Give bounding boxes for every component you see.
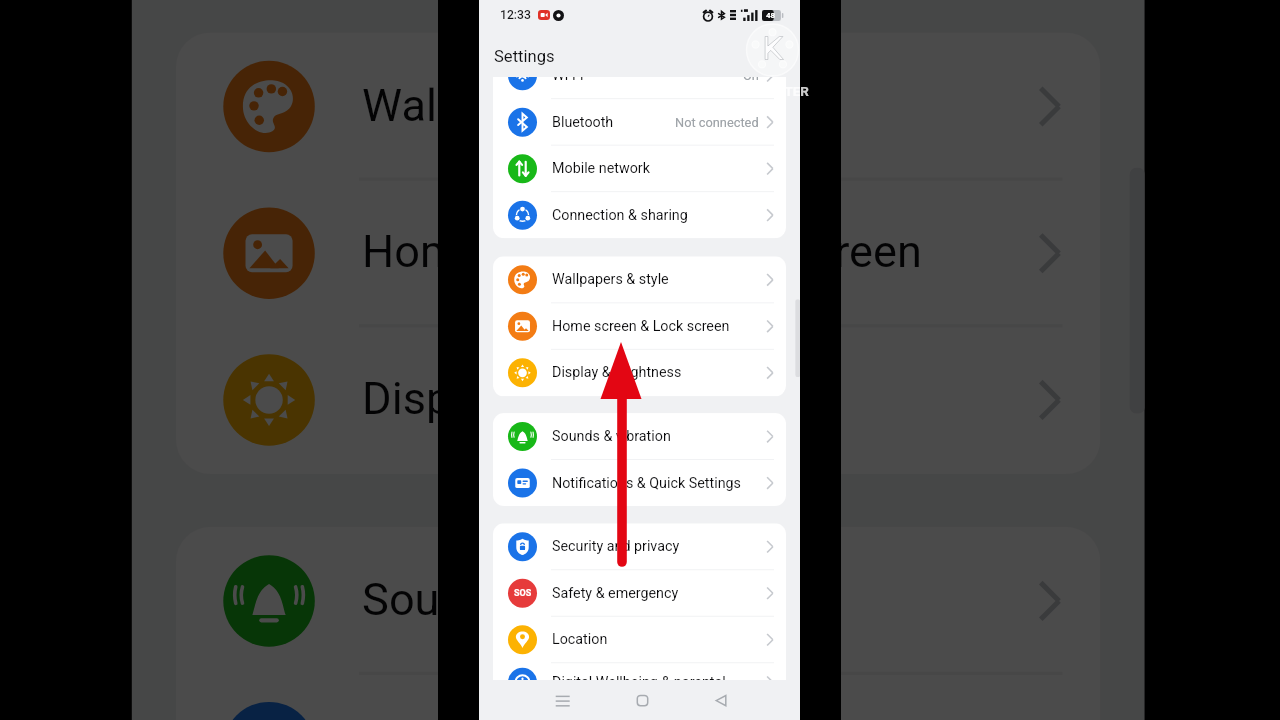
staticText: Wi-Fi — [552, 77, 584, 84]
button[interactable]: Digital Wellbeing & parental — [493, 659, 786, 680]
button[interactable]: Wi-Fi — [493, 77, 786, 99]
staticText: Wallpapers & style — [362, 80, 731, 133]
staticText: Not connected — [675, 115, 759, 130]
staticText: 48 — [766, 11, 776, 20]
staticText: Notifications & Quick Settings — [552, 474, 741, 491]
button[interactable]: Recent apps — [546, 684, 580, 718]
staticText: Display & brightness — [552, 364, 682, 381]
button[interactable]: Security and privacy — [493, 523, 786, 570]
staticText: Wallpapers & style — [552, 271, 669, 288]
button[interactable]: Bluetooth — [493, 99, 786, 146]
button[interactable]: Wallpapers & style — [493, 256, 786, 303]
staticText: Settings — [494, 46, 555, 65]
staticText: Bluetooth — [552, 114, 614, 131]
button[interactable]: Display & brightness — [493, 349, 786, 396]
button[interactable]: Wallpapers & style — [176, 32, 1100, 181]
staticText: Connection & sharing — [552, 207, 688, 224]
button[interactable]: Home — [625, 684, 659, 718]
staticText: Digital Wellbeing & parental — [552, 674, 726, 680]
staticText: SOS — [514, 588, 532, 599]
button[interactable]: Mobile network — [493, 145, 786, 192]
button[interactable]: Home screen & Lock screen — [493, 303, 786, 350]
staticText: Home screen & Lock screen — [362, 226, 924, 280]
staticText: 12:33 — [500, 8, 531, 22]
staticText: On — [743, 77, 759, 83]
staticText: Location — [552, 631, 608, 648]
staticText: Sounds & vibration — [362, 574, 737, 628]
button[interactable]: Connection & sharing — [493, 192, 786, 238]
button[interactable]: SOS — [493, 570, 786, 617]
button[interactable]: Location — [493, 616, 786, 663]
button[interactable]: Display & brightness — [176, 326, 1100, 474]
staticText: Mobile network — [552, 160, 650, 177]
button[interactable]: Home screen & Lock screen — [176, 179, 1100, 327]
button[interactable]: Sounds & vibration — [493, 413, 786, 460]
staticText: Safety & emergency — [552, 585, 679, 602]
staticText: Sounds & vibration — [552, 428, 671, 445]
staticText: Home screen & Lock screen — [552, 318, 730, 335]
button[interactable]: Sounds & vibration — [176, 527, 1100, 675]
button[interactable]: Notifications & Quick Settings — [493, 459, 786, 506]
staticText: Display & brightness — [362, 373, 772, 427]
button[interactable]: Notifications & Quick Settings — [176, 673, 1100, 720]
staticText: Security and privacy — [552, 538, 680, 555]
staticText: KINEMASTER — [726, 84, 809, 100]
button[interactable]: Back — [704, 684, 738, 718]
